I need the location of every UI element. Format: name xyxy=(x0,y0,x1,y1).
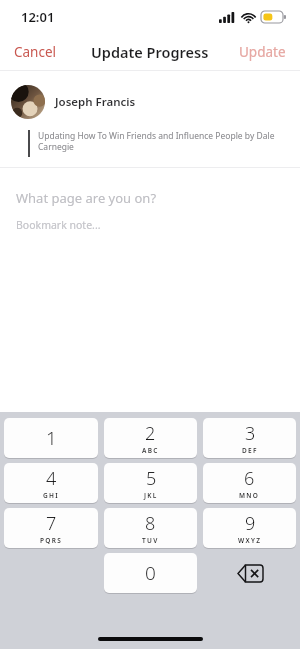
staticText: 0 xyxy=(145,560,156,586)
staticText: 12:01 xyxy=(21,8,55,26)
button[interactable]: 8 xyxy=(104,508,197,548)
button[interactable]: 2 xyxy=(104,418,197,458)
button[interactable]: 9 xyxy=(203,508,296,548)
button[interactable]: Cancel xyxy=(0,36,71,68)
button[interactable]: 3 xyxy=(203,418,296,458)
button[interactable]: 5 xyxy=(104,463,197,503)
staticText: Update xyxy=(239,43,286,61)
staticText: Bookmark note... xyxy=(16,218,101,232)
staticText: Update Progress xyxy=(91,42,209,62)
button[interactable]: Update xyxy=(225,36,300,68)
staticText: ABC xyxy=(142,446,159,455)
staticText: JKL xyxy=(144,491,158,500)
staticText: What page are you on? xyxy=(16,189,157,207)
staticText: 1 xyxy=(46,425,57,451)
staticText: WXYZ xyxy=(238,536,262,545)
button[interactable]: 4 xyxy=(4,463,98,503)
staticText: TUV xyxy=(142,536,159,545)
staticText: Updating How To Win Friends and Influenc… xyxy=(38,130,284,152)
button[interactable]: 6 xyxy=(203,463,296,503)
button[interactable]: What page are you on? xyxy=(0,189,300,207)
staticText: MNO xyxy=(239,491,260,500)
staticText: 2 xyxy=(145,421,156,446)
staticText: DEF xyxy=(242,446,258,455)
staticText: PQRS xyxy=(40,536,63,545)
staticText: Cancel xyxy=(14,43,57,61)
button[interactable]: Bookmark note... xyxy=(0,218,300,232)
button[interactable]: 7 xyxy=(4,508,98,548)
staticText: 6 xyxy=(244,466,255,491)
staticText: 3 xyxy=(245,421,256,446)
staticText: 5 xyxy=(146,466,157,491)
button[interactable]: Backspace xyxy=(230,556,270,590)
staticText: Joseph Francis xyxy=(55,94,136,110)
staticText: 4 xyxy=(46,466,57,491)
button[interactable]: 1 xyxy=(4,418,98,458)
staticText: 9 xyxy=(245,511,256,536)
button[interactable]: Joseph Francis xyxy=(0,85,300,119)
staticText: 7 xyxy=(46,511,57,536)
staticText: 8 xyxy=(145,511,156,536)
staticText: GHI xyxy=(43,491,59,500)
button[interactable]: 0 xyxy=(104,553,197,593)
